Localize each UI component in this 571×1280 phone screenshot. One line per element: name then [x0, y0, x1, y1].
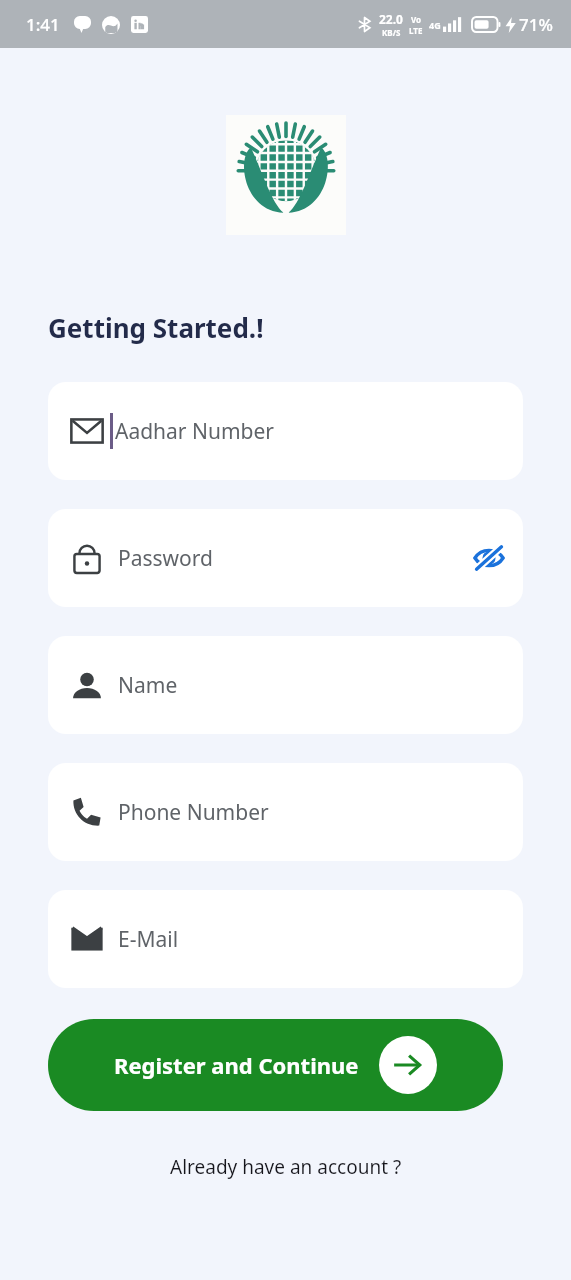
staticText: Vo [411, 14, 422, 25]
staticText: E-Mail [118, 925, 179, 954]
button[interactable]: E-Mail [48, 890, 523, 988]
staticText: 1:41 [26, 13, 60, 36]
staticText: Getting Started.! [48, 310, 264, 345]
staticText: Password [118, 544, 213, 573]
staticText: 22.0 [379, 11, 403, 27]
button[interactable]: Aadhar Number [48, 382, 523, 480]
staticText: Name [118, 671, 178, 700]
staticText: Register and Continue [114, 1050, 359, 1080]
button[interactable]: Password [48, 509, 523, 607]
staticText: KB/S [382, 27, 401, 38]
button[interactable]: Phone Number [48, 763, 523, 861]
staticText: 71% [519, 13, 553, 36]
staticText: Phone Number [118, 798, 269, 827]
button[interactable]: Name [48, 636, 523, 734]
staticText: LTE [409, 25, 423, 36]
staticText: 4G [429, 19, 441, 31]
button[interactable]: Toggle password visibility [463, 532, 515, 584]
staticText: Aadhar Number [115, 417, 275, 446]
button[interactable]: Already have an account ? [170, 1154, 402, 1180]
button[interactable]: Register and Continue [48, 1019, 503, 1111]
